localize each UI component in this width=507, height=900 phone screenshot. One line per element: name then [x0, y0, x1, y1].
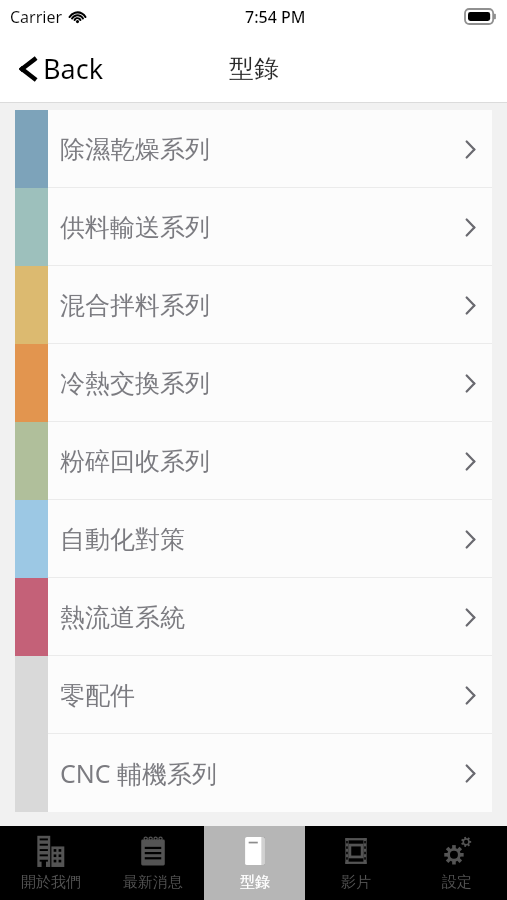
staticText: 冷熱交換系列	[60, 368, 210, 399]
button[interactable]: 混合拌料系列	[15, 266, 492, 344]
button[interactable]: 型錄	[204, 826, 305, 900]
button[interactable]: 自動化對策	[15, 500, 492, 578]
button[interactable]: 熱流道系統	[15, 578, 492, 656]
staticText: 型錄	[229, 53, 279, 84]
staticText: 最新消息	[123, 873, 183, 892]
button[interactable]: 供料輸送系列	[15, 188, 492, 266]
button[interactable]: 零配件	[15, 656, 492, 734]
button[interactable]: 開於我們	[0, 826, 102, 900]
staticText: 7:54 PM	[245, 6, 306, 28]
staticText: 除濕乾燥系列	[60, 134, 210, 165]
button[interactable]: 除濕乾燥系列	[15, 110, 492, 188]
staticText: CNC 輔機系列	[60, 756, 218, 790]
button[interactable]: 冷熱交換系列	[15, 344, 492, 422]
button[interactable]: 粉碎回收系列	[15, 422, 492, 500]
button[interactable]: 設定	[406, 826, 507, 900]
staticText: Back	[43, 50, 104, 87]
button[interactable]: Back	[12, 42, 110, 95]
staticText: 開於我們	[21, 873, 81, 892]
staticText: 零配件	[60, 680, 135, 711]
staticText: 設定	[442, 873, 472, 892]
staticText: 供料輸送系列	[60, 212, 210, 243]
staticText: 混合拌料系列	[60, 290, 210, 321]
staticText: Carrier	[10, 6, 63, 28]
staticText: 熱流道系統	[60, 602, 185, 633]
staticText: 自動化對策	[60, 524, 185, 555]
button[interactable]: 影片	[305, 826, 406, 900]
staticText: 影片	[341, 873, 371, 892]
staticText: 型錄	[240, 873, 270, 892]
button[interactable]: CNC 輔機系列	[15, 734, 492, 812]
button[interactable]: 最新消息	[102, 826, 204, 900]
staticText: 粉碎回收系列	[60, 446, 210, 477]
